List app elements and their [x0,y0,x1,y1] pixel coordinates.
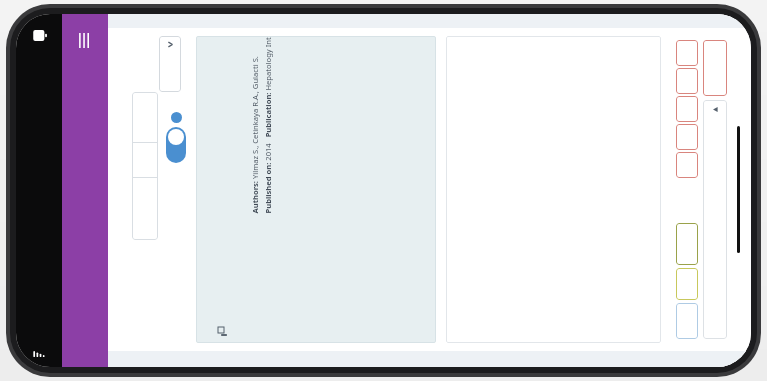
button[interactable]: 40 [159,36,181,92]
button[interactable]: eXclude [703,40,727,96]
staticText: Authors: Yilmaz S., Cetinkaya R.A., Gula… [260,36,283,202]
staticText: Auto Advance [26,14,36,265]
button[interactable]: Select an exclude reason [703,100,727,339]
button[interactable]: Open DOI link [218,327,224,333]
button[interactable]: DOI: 10.1007/s12072-014-9519-7 [196,36,436,343]
button[interactable]: Help about auto advance [171,112,182,123]
button[interactable]: Yes [676,268,698,300]
button[interactable]: O [676,68,698,94]
button[interactable]: Auto advance toggle [166,127,186,163]
button[interactable]: Open navigation menu [71,26,99,54]
button[interactable]: Aim: Exposure to Hepatitis B infection i… [446,36,661,343]
button[interactable]: P [676,152,698,178]
button[interactable]: C [676,96,698,122]
button[interactable]: I [676,124,698,150]
button[interactable]: S [676,40,698,66]
button[interactable]: « Previous [132,178,158,240]
button[interactable]: Reset [676,303,698,339]
button[interactable]: Next » [132,92,158,142]
button[interactable]: Maybe [676,223,698,265]
